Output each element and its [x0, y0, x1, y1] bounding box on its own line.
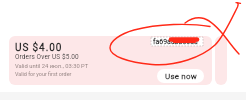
- staticText: Orders Over US $5.00: [15, 53, 79, 61]
- staticText: Valid until 24 июл., 03:30 PT: [15, 63, 89, 70]
- other: Annotation: [0, 0, 246, 100]
- staticText: Use now: [165, 72, 197, 81]
- button[interactable]: US $4.00: [9, 36, 212, 85]
- staticText: Valid for your first order: [15, 71, 72, 77]
- button[interactable]: fa69aabbccdd: [151, 37, 203, 46]
- staticText: US $4.00: [15, 42, 63, 54]
- button[interactable]: Use now: [157, 69, 204, 83]
- staticText: fa69aabbccdd: [153, 38, 198, 46]
